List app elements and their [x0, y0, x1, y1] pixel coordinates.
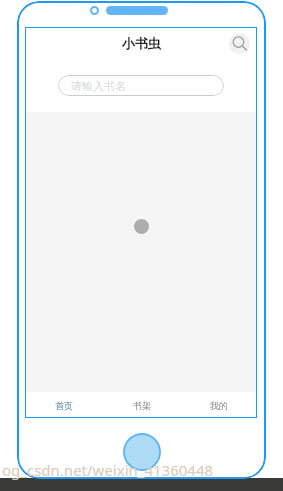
staticText: og_csdn.net/weixin_41360448	[2, 460, 214, 480]
button[interactable]: 我的	[180, 392, 257, 418]
staticText: 首页	[55, 400, 73, 411]
staticText: 我的	[210, 400, 228, 411]
staticText: 请输入书名	[71, 79, 126, 93]
staticText: 小书虫	[122, 35, 161, 51]
staticText: 书架	[133, 400, 151, 411]
button[interactable]: Home	[123, 433, 161, 471]
button[interactable]: 请输入书名	[58, 75, 224, 96]
button[interactable]: 首页	[25, 392, 103, 418]
button[interactable]: Search	[229, 33, 250, 54]
button[interactable]: 书架	[103, 392, 180, 418]
